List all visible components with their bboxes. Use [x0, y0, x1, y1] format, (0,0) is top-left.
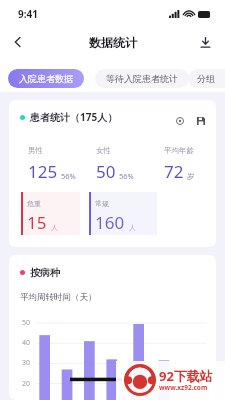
staticText: 常规 [95, 199, 109, 208]
staticText: 9:41 [18, 7, 38, 21]
staticText: 20 [22, 379, 31, 389]
staticText: 按病种 [30, 266, 60, 279]
staticText: 125 [28, 160, 58, 183]
staticText: 50 [22, 318, 31, 328]
staticText: 160 [95, 211, 125, 234]
staticText: 危重 [27, 199, 41, 208]
staticText: 56% [119, 171, 134, 181]
button[interactable]: History [173, 114, 186, 127]
staticText: www.xz92.com [159, 383, 208, 392]
staticText: 男性 [28, 146, 43, 155]
staticText: 92下载站 [159, 367, 213, 385]
staticText: 入院患者数据 [19, 73, 73, 84]
staticText: 患者统计（175人） [30, 110, 118, 124]
staticText: 人 [51, 223, 58, 232]
staticText: 30 [22, 358, 31, 368]
staticText: 40 [22, 338, 31, 348]
button[interactable]: Save [194, 114, 207, 127]
staticText: 平均周转时间（天） [20, 292, 97, 303]
staticText: 72 [164, 160, 184, 183]
button[interactable]: 入院患者数据 [8, 69, 84, 88]
staticText: 岁 [187, 172, 195, 181]
staticText: 56% [61, 171, 76, 181]
staticText: 数据统计 [89, 35, 137, 50]
staticText: 15 [27, 211, 47, 234]
staticText: 50 [96, 160, 116, 183]
button[interactable]: 分组 [188, 69, 225, 88]
staticText: 等待入院患者统计 [106, 73, 178, 84]
staticText: 女性 [96, 146, 111, 155]
button[interactable]: Download [194, 31, 216, 53]
staticText: 人 [129, 223, 136, 232]
button[interactable]: Back [6, 30, 30, 54]
staticText: 平均年龄 [164, 146, 194, 155]
staticText: 分组 [197, 73, 215, 84]
button[interactable]: 等待入院患者统计 [95, 69, 189, 88]
